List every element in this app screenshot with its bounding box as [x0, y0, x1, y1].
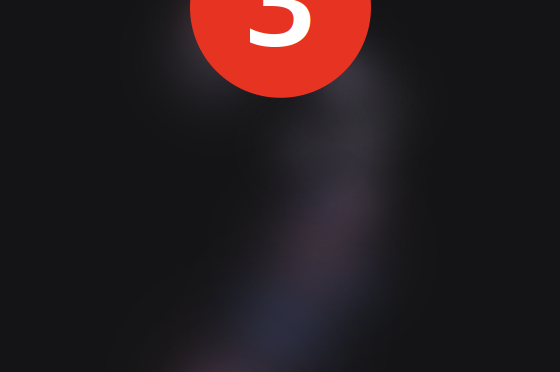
staticText: 3 — [244, 0, 316, 80]
button[interactable]: 3 notifications — [190, 0, 371, 98]
